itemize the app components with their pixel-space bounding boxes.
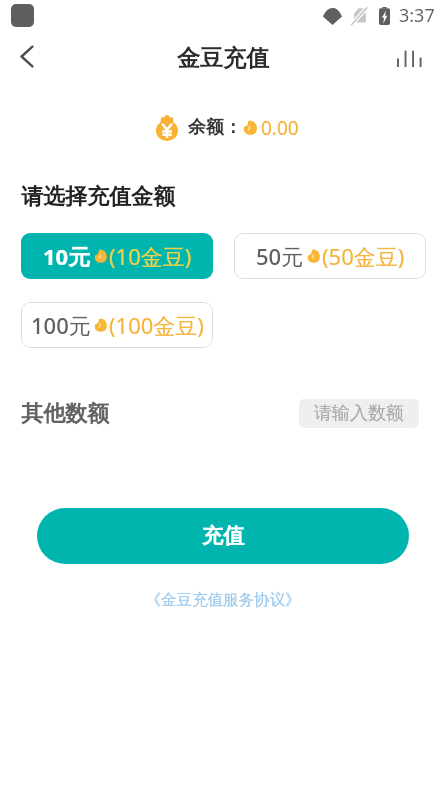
staticText: 0.00 xyxy=(261,115,299,141)
staticText: 请选择充值金额 xyxy=(21,183,175,211)
button[interactable]: 50元 xyxy=(234,233,426,279)
staticText: 50元 xyxy=(256,241,304,271)
staticText: 余额： xyxy=(188,116,242,139)
staticText: 充值 xyxy=(202,523,244,549)
staticText: 请输入数额 xyxy=(314,402,404,425)
staticText: 其他数额 xyxy=(21,400,109,428)
staticText: (100金豆) xyxy=(109,310,204,340)
staticText: 金豆充值 xyxy=(177,44,269,73)
staticText: 10元 xyxy=(43,241,91,271)
staticText: (50金豆) xyxy=(322,241,405,271)
button[interactable]: 请输入数额 xyxy=(299,399,419,428)
button[interactable]: Back xyxy=(4,34,52,82)
staticText: 3:37 xyxy=(399,3,435,28)
button[interactable]: 充值 xyxy=(37,508,409,564)
button[interactable]: Equalizer xyxy=(385,34,433,82)
button[interactable]: 10元 xyxy=(21,233,213,279)
button[interactable]: 100元 xyxy=(21,302,213,348)
button[interactable]: 《金豆充值服务协议》 xyxy=(0,590,446,610)
staticText: 100元 xyxy=(31,310,91,340)
staticText: (10金豆) xyxy=(109,241,192,271)
